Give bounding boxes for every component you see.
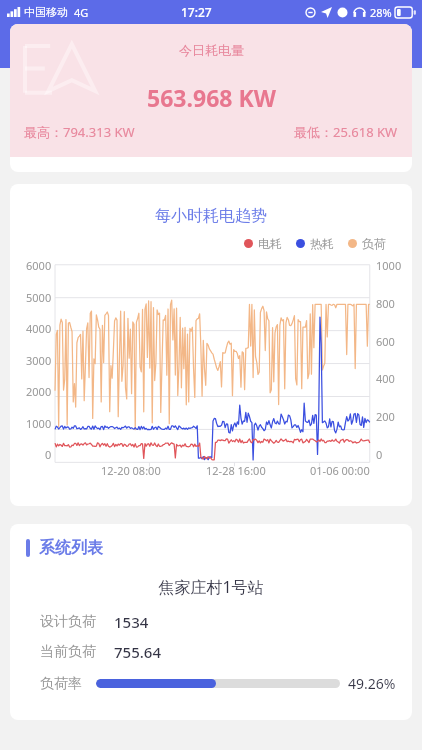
staticText: 电耗 — [258, 236, 282, 251]
staticText: 负荷 — [362, 236, 386, 251]
staticText: 最高：794.313 KW — [24, 123, 135, 141]
staticText: 设计负荷 — [40, 613, 96, 631]
staticText: 0 — [45, 447, 52, 462]
staticText: 项目详情 — [175, 35, 247, 58]
staticText: 0 — [376, 447, 383, 462]
button[interactable]: 每小时耗电趋势 — [10, 184, 412, 506]
staticText: 每小时耗电趋势 — [10, 206, 412, 226]
staticText: 3000 — [26, 353, 52, 368]
staticText: 5000 — [26, 290, 52, 305]
staticText: 12-20 08:00 — [101, 463, 161, 478]
staticText: 4G — [74, 5, 89, 20]
button[interactable]: Map — [372, 24, 416, 68]
staticText: 200 — [376, 409, 395, 424]
staticText: 当前负荷 — [40, 643, 96, 661]
staticText: 563.968 KW — [147, 82, 276, 113]
staticText: 600 — [376, 334, 395, 349]
staticText: 800 — [376, 296, 395, 311]
button[interactable]: 今日耗电量 — [10, 24, 412, 172]
staticText: 28% — [370, 5, 392, 20]
staticText: 755.64 — [114, 642, 161, 662]
staticText: 中国移动 — [24, 5, 68, 19]
staticText: 1534 — [114, 612, 149, 632]
staticText: 01-06 00:00 — [310, 463, 370, 478]
staticText: 1000 — [26, 416, 52, 431]
staticText: 400 — [376, 371, 395, 386]
button[interactable]: Back — [4, 24, 48, 68]
staticText: 2000 — [26, 384, 52, 399]
staticText: 17:27 — [181, 4, 212, 20]
staticText: 49.26% — [348, 674, 396, 693]
staticText: 负荷率 — [40, 675, 82, 693]
staticText: 4000 — [26, 321, 52, 336]
button[interactable]: 系统列表 — [10, 524, 412, 720]
staticText: 焦家庄村1号站 — [10, 576, 412, 598]
staticText: 系统列表 — [39, 538, 103, 558]
staticText: 6000 — [26, 258, 52, 273]
staticText: 热耗 — [310, 236, 334, 251]
staticText: 最低：25.618 KW — [294, 123, 398, 141]
staticText: 12-28 16:00 — [206, 463, 266, 478]
staticText: 1000 — [376, 258, 402, 273]
staticText: 今日耗电量 — [179, 42, 244, 58]
